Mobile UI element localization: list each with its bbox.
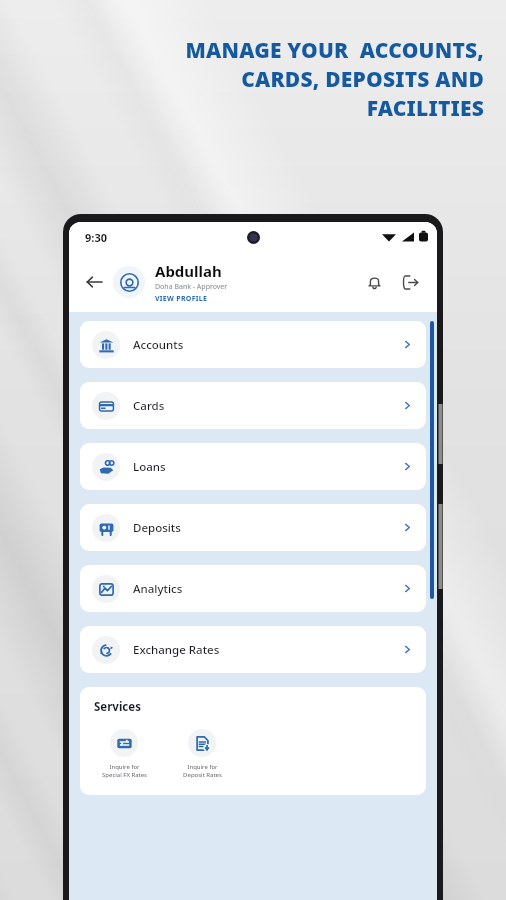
staticText: CARDS, DEPOSITS AND <box>241 65 484 94</box>
button[interactable]: Loans <box>80 443 426 490</box>
staticText: Inquire for <box>187 763 218 771</box>
staticText: Loans <box>133 459 402 475</box>
staticText: Abdullah <box>155 261 222 281</box>
button[interactable]: Abdullah <box>155 261 359 304</box>
staticText: 9:30 <box>85 230 107 245</box>
staticText: Special FX Rates <box>102 771 147 779</box>
button[interactable]: Deposits <box>80 504 426 551</box>
button[interactable]: Profile avatar <box>113 266 145 298</box>
button[interactable]: Accounts <box>80 321 426 368</box>
staticText: Doha Bank - Approver <box>155 282 228 292</box>
button[interactable]: Inquire for <box>94 727 154 781</box>
button[interactable]: Inquire for <box>172 727 232 781</box>
staticText: Services <box>94 699 141 715</box>
staticText: VIEW PROFILE <box>155 294 208 304</box>
button[interactable]: Log out <box>395 267 425 297</box>
staticText: Deposits <box>133 520 402 536</box>
staticText: Cards <box>133 398 402 414</box>
staticText: Exchange Rates <box>133 642 402 658</box>
staticText: FACILITIES <box>366 94 484 123</box>
button[interactable]: Analytics <box>80 565 426 612</box>
button[interactable]: Cards <box>80 382 426 429</box>
staticText: Accounts <box>133 337 402 353</box>
staticText: Deposit Rates <box>183 771 222 779</box>
staticText: Inquire for <box>109 763 140 771</box>
staticText: Analytics <box>133 581 402 597</box>
button[interactable]: Back <box>79 267 109 297</box>
button[interactable]: Exchange Rates <box>80 626 426 673</box>
button[interactable]: Notifications <box>359 267 389 297</box>
staticText: MANAGE YOUR ACCOUNTS, <box>185 36 484 65</box>
